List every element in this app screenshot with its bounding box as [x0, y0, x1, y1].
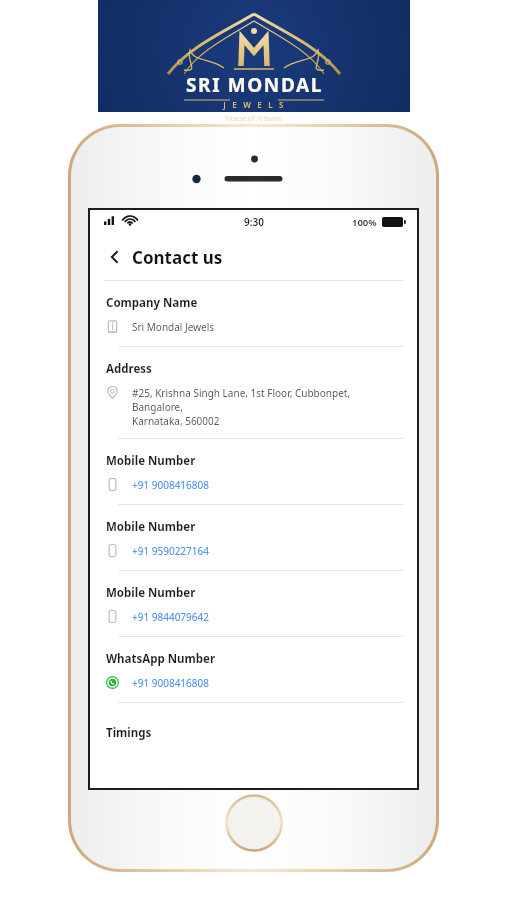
staticText: +91 9008416808 [132, 676, 209, 690]
staticText: 100% [352, 216, 377, 229]
staticText: J E W E L S [223, 99, 286, 110]
staticText: Mobile Number [106, 453, 196, 469]
button[interactable]: Home [225, 794, 283, 852]
staticText: WhatsApp Number [106, 651, 216, 667]
button[interactable]: Company Name [90, 295, 417, 361]
staticText: Timings [106, 725, 152, 741]
staticText: Sri Mondal Jewels [132, 320, 215, 334]
staticText: SRI MONDAL [186, 72, 323, 98]
staticText: +91 9590227164 [132, 544, 209, 558]
button[interactable]: Mobile Number [90, 519, 417, 585]
staticText: #25, Krishna Singh Lane, 1st Floor, Cubb… [132, 386, 403, 428]
staticText: Mobile Number [106, 519, 196, 535]
staticText: Contact us [132, 246, 223, 269]
staticText: House of Artisans [226, 114, 282, 124]
button[interactable]: Mobile Number [90, 585, 417, 651]
staticText: +91 9008416808 [132, 478, 209, 492]
button[interactable]: WhatsApp Number [90, 651, 417, 717]
staticText: +91 9844079642 [132, 610, 209, 624]
staticText: Company Name [106, 295, 198, 311]
button[interactable]: Back [102, 244, 128, 270]
button[interactable]: Mobile Number [90, 453, 417, 519]
staticText: Mobile Number [106, 585, 196, 601]
button[interactable]: Address [90, 361, 417, 453]
staticText: 9:30 [244, 215, 264, 229]
staticText: Address [106, 361, 152, 377]
